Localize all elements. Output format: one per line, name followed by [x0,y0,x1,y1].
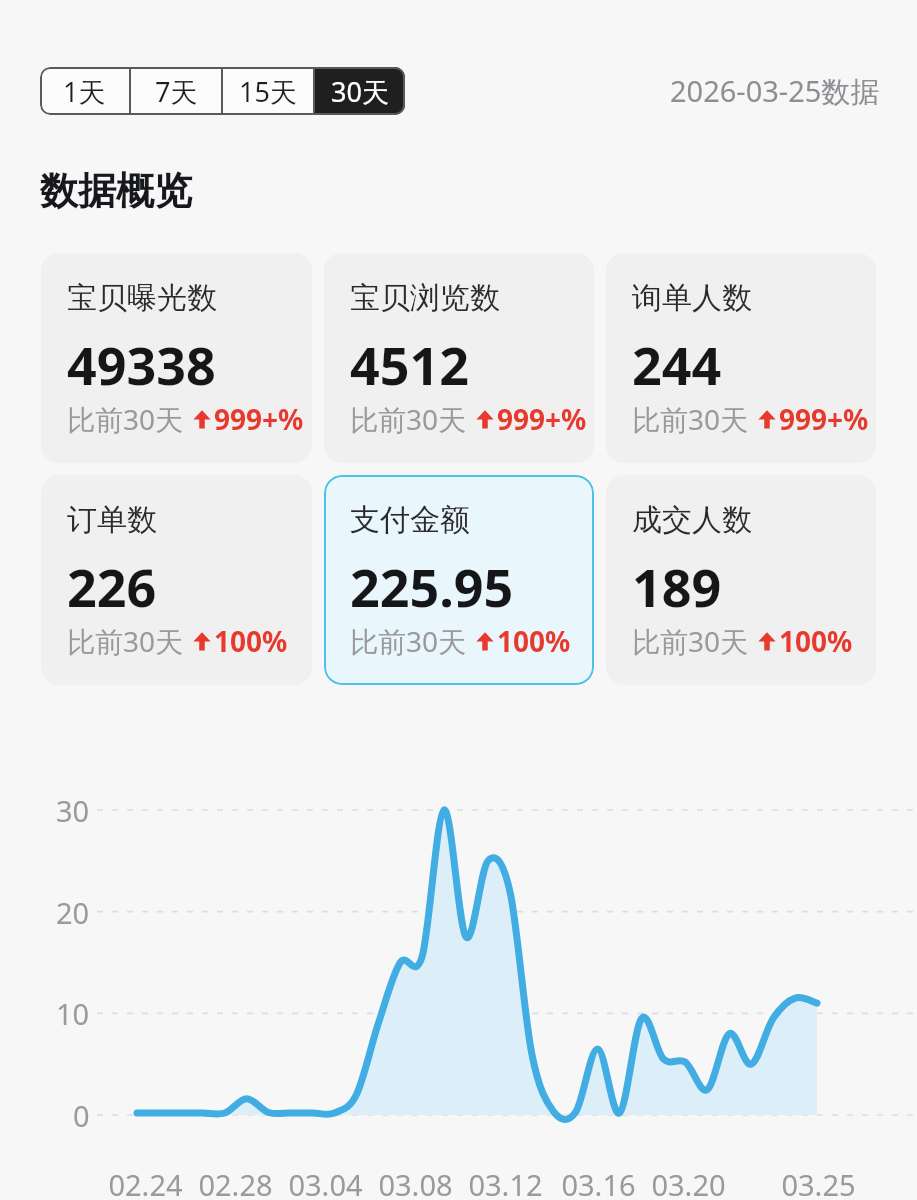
staticText: 0 [73,1096,90,1135]
staticText: 15天 [239,73,297,110]
staticText: 100% [497,622,571,659]
button[interactable]: 宝贝浏览数 [324,253,594,463]
staticText: 比前30天 [67,400,184,437]
staticText: 比前30天 [632,622,749,659]
staticText: 100% [214,622,288,659]
staticText: 999+% [779,400,869,437]
staticText: 7天 [155,73,198,110]
staticText: 成交人数 [632,501,752,539]
staticText: 225.95 [350,551,514,622]
staticText: 02.28 [198,1165,273,1200]
staticText: 宝贝曝光数 [67,279,217,317]
button[interactable]: 询单人数 [606,253,876,463]
button[interactable]: 支付金额 [324,475,594,685]
staticText: 49338 [67,329,216,400]
staticText: 询单人数 [632,279,752,317]
staticText: 10 [56,994,90,1033]
staticText: 02.24 [108,1165,183,1200]
button[interactable]: 7天 [131,67,221,115]
button[interactable]: 成交人数 [606,475,876,685]
staticText: 03.12 [468,1165,543,1200]
staticText: 226 [67,551,157,622]
staticText: 100% [779,622,853,659]
staticText: 宝贝浏览数 [350,279,500,317]
staticText: 03.20 [651,1165,726,1200]
staticText: 2026-03-25数据 [670,71,880,111]
staticText: 03.25 [781,1165,856,1200]
button[interactable]: 15天 [223,67,313,115]
staticText: 03.08 [378,1165,453,1200]
staticText: 30天 [331,73,389,110]
staticText: 244 [632,329,722,400]
button[interactable]: 宝贝曝光数 [41,253,312,463]
button[interactable]: 1天 [40,67,129,115]
staticText: 4512 [350,329,469,400]
staticText: 比前30天 [632,400,749,437]
staticText: 03.16 [561,1165,636,1200]
staticText: 比前30天 [350,400,467,437]
staticText: 1天 [63,73,106,110]
staticText: 189 [632,551,722,622]
staticText: 比前30天 [350,622,467,659]
staticText: 30 [56,791,90,830]
staticText: 订单数 [67,501,157,539]
staticText: 比前30天 [67,622,184,659]
staticText: 03.04 [288,1165,363,1200]
staticText: 999+% [497,400,587,437]
staticText: 支付金额 [350,501,470,539]
staticText: 20 [56,893,90,932]
staticText: 999+% [214,400,304,437]
button[interactable]: 30天 [315,67,405,115]
staticText: 数据概览 [40,167,192,215]
button[interactable]: 订单数 [41,475,312,685]
